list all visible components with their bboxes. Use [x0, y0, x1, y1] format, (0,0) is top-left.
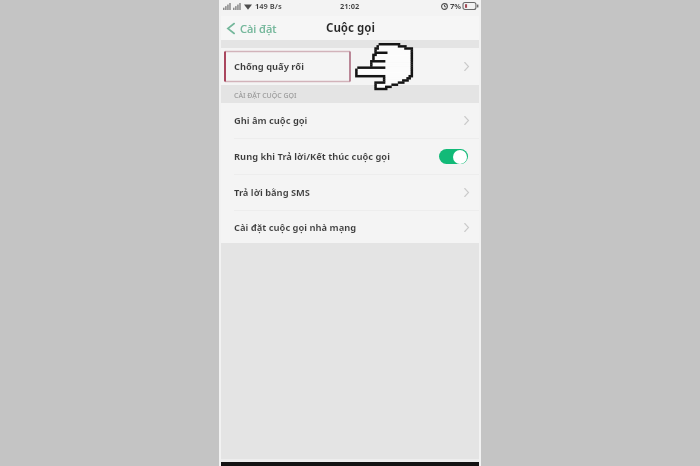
button[interactable]: Rung khi Trả lời/Kết thúc cuộc gọi [219, 139, 481, 174]
staticText: Rung khi Trả lời/Kết thúc cuộc gọi [234, 150, 390, 163]
staticText: Cài đặt [240, 21, 277, 36]
staticText: Cuộc gọi [326, 20, 375, 36]
button[interactable]: Ghi âm cuộc gọi [219, 103, 481, 138]
staticText: 149 B/s [255, 1, 282, 11]
staticText: CÀI ĐẶT CUỘC GỌI [234, 91, 297, 101]
staticText: 21:02 [340, 1, 360, 11]
staticText: 7% [450, 1, 462, 11]
staticText: Cài đặt cuộc gọi nhà mạng [234, 221, 357, 234]
button[interactable]: Cài đặt cuộc gọi nhà mạng [219, 211, 481, 243]
staticText: Trả lời bằng SMS [234, 186, 310, 199]
staticText: Chống quấy rối [234, 60, 304, 73]
button[interactable]: Vibrate on answer/end call toggle [439, 149, 468, 164]
staticText: Ghi âm cuộc gọi [234, 114, 308, 127]
button[interactable]: Chống quấy rối [219, 48, 481, 85]
button[interactable]: Trả lời bằng SMS [219, 175, 481, 210]
button[interactable]: Cài đặt [227, 21, 277, 36]
